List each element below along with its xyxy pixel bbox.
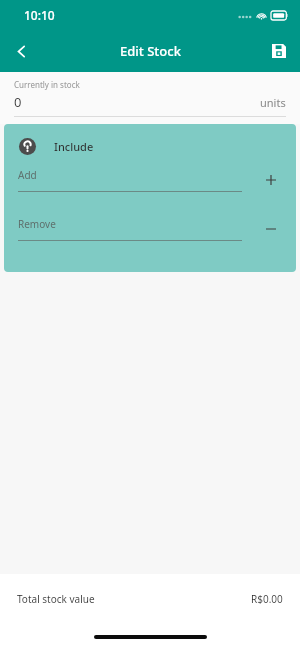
staticText: Edit Stock [120, 42, 181, 60]
staticText: Currently in stock [14, 79, 80, 90]
staticText: Total stock value [17, 592, 95, 606]
staticText: units [260, 95, 286, 110]
button[interactable]: Back [0, 30, 42, 72]
button[interactable]: Increase [260, 169, 282, 191]
staticText: Add [18, 168, 37, 182]
button[interactable]: Remove [4, 217, 296, 255]
button[interactable]: Help [4, 124, 296, 168]
button[interactable]: Add [4, 168, 296, 206]
button[interactable]: Save [258, 30, 300, 72]
button[interactable]: Help [18, 137, 36, 155]
staticText: Include [54, 139, 94, 154]
staticText: Remove [18, 217, 56, 231]
staticText: 10:10 [24, 7, 55, 23]
button[interactable]: Decrease [260, 218, 282, 240]
staticText: 0 [14, 93, 22, 111]
staticText: R$0.00 [251, 592, 283, 606]
